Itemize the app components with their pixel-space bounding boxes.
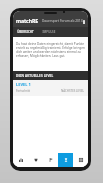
button[interactable]: Awards	[58, 153, 73, 167]
staticText: LEVEL 1	[16, 82, 31, 87]
staticText: Dauersport Forum ab 2013	[42, 19, 83, 23]
staticText: ÜBERSICHT	[17, 30, 34, 34]
staticText: IMPULSE	[42, 30, 56, 34]
staticText: matchRE	[16, 17, 39, 24]
button[interactable]: Goals	[43, 153, 58, 167]
button[interactable]: Health	[28, 153, 43, 167]
staticText: NÄCHSTES LEVEL	[61, 89, 85, 93]
button[interactable]: Statistics	[13, 153, 28, 167]
button[interactable]: ÜBERSICHT	[13, 27, 37, 37]
button[interactable]: More	[73, 153, 88, 167]
staticText: Fortschritt	[16, 89, 31, 93]
button[interactable]: Open magazine	[83, 20, 85, 24]
button[interactable]: IMPULSE	[37, 27, 61, 37]
staticText: Du hast deine Daten eingereicht, damit P…	[16, 42, 85, 58]
staticText: DEIN AKTUELLES LEVEL	[16, 74, 54, 78]
